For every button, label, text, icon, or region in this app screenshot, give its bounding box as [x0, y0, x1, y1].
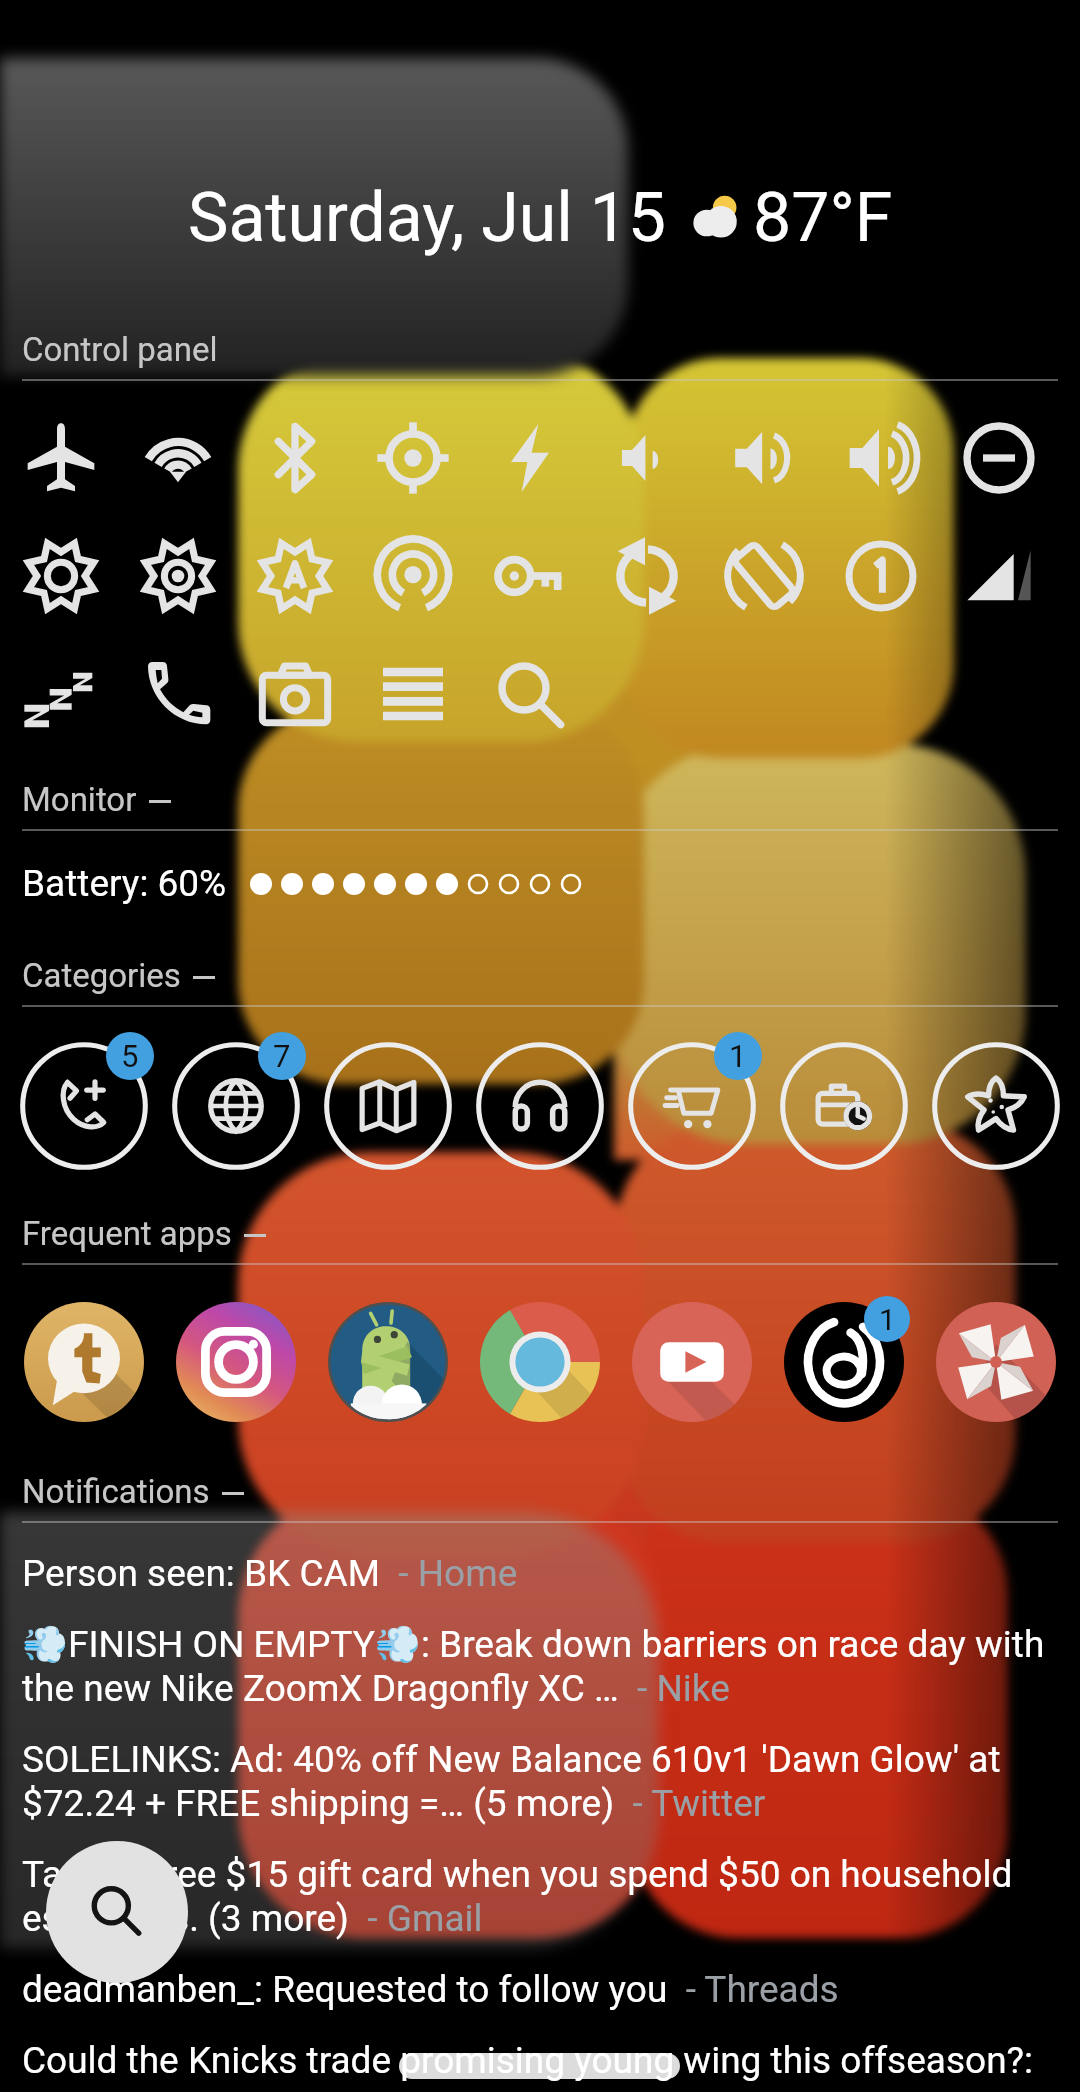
button[interactable]: Auto rotate — [720, 532, 808, 620]
button[interactable]: Person seen: BK CAM - Home — [22, 1552, 1062, 1595]
staticText: Monitor — [22, 780, 137, 819]
button[interactable]: Brightness level — [134, 532, 222, 620]
button[interactable]: Auto sync — [603, 532, 691, 620]
staticText: 1 — [729, 1038, 747, 1074]
button[interactable]: Chrome — [478, 1300, 602, 1424]
staticText: 7 — [273, 1038, 291, 1074]
button[interactable]: Android — [326, 1300, 450, 1424]
button[interactable]: Work — [774, 1036, 914, 1176]
button[interactable]: Flashlight — [486, 414, 574, 502]
button[interactable]: Photos — [934, 1300, 1058, 1424]
staticText: 1 — [879, 1302, 896, 1337]
staticText: Categories — [22, 956, 181, 995]
button[interactable]: Do not disturb — [955, 414, 1043, 502]
staticText: SOLELINKS: Ad: 40% off New Balance 610v1… — [22, 1738, 1062, 1825]
button[interactable]: Threads — [782, 1300, 906, 1424]
button[interactable]: 💨FINISH ON EMPTY💨: Break down barriers o… — [22, 1623, 1062, 1710]
staticText: 87°F — [753, 178, 893, 258]
button[interactable]: Phone — [134, 650, 222, 738]
button[interactable]: Maps — [318, 1036, 458, 1176]
staticText: deadmanben_: Requested to follow you - T… — [22, 1968, 839, 2011]
button[interactable]: Camera — [251, 650, 339, 738]
staticText: Battery: 60% — [22, 862, 227, 905]
staticText: 💨FINISH ON EMPTY💨: Break down barriers o… — [22, 1623, 1062, 1710]
button[interactable]: Could the Knicks trade promising young w… — [0, 2039, 1080, 2082]
button[interactable]: Calls — [14, 1036, 154, 1176]
staticText: Person seen: BK CAM - Home — [22, 1552, 518, 1595]
button[interactable]: Search — [46, 1841, 188, 1983]
button[interactable]: YouTube — [630, 1300, 754, 1424]
button[interactable]: Ring volume — [603, 414, 691, 502]
staticText: Frequent apps — [22, 1214, 232, 1253]
button[interactable]: Media volume — [720, 414, 808, 502]
button[interactable]: Auto brightness — [251, 532, 339, 620]
staticText: Control panel — [22, 330, 218, 369]
button[interactable]: Alarm volume — [837, 414, 925, 502]
button[interactable]: Sleep — [17, 650, 105, 738]
staticText: Could the Knicks trade promising young w… — [22, 2039, 1034, 2082]
button[interactable]: Airplane mode — [17, 414, 105, 502]
button[interactable]: Search — [486, 650, 574, 738]
button[interactable]: Signal — [955, 532, 1043, 620]
button[interactable]: Browser — [166, 1036, 306, 1176]
button[interactable]: Brightness — [17, 532, 105, 620]
button[interactable]: Wi-Fi — [134, 414, 222, 502]
staticText: 5 — [121, 1038, 139, 1074]
staticText: Notifications — [22, 1472, 210, 1511]
button[interactable]: Instagram — [174, 1300, 298, 1424]
button[interactable]: SOLELINKS: Ad: 40% off New Balance 610v1… — [22, 1738, 1062, 1825]
button[interactable]: deadmanben_: Requested to follow you - T… — [22, 1968, 1062, 2011]
button[interactable]: VPN — [486, 532, 574, 620]
button[interactable]: Location — [369, 414, 457, 502]
button[interactable]: Music — [470, 1036, 610, 1176]
button[interactable]: Other — [926, 1036, 1066, 1176]
button[interactable]: Menu — [369, 650, 457, 738]
staticText: Saturday, Jul 15 — [188, 178, 667, 258]
button[interactable]: SIM 1 — [837, 532, 925, 620]
button[interactable]: Shopping — [622, 1036, 762, 1176]
button[interactable]: Hotspot — [369, 532, 457, 620]
button[interactable]: Target: Free $15 gift card when you spen… — [22, 1853, 1062, 1940]
button[interactable]: Bluetooth — [251, 414, 339, 502]
button[interactable]: Tumblr — [22, 1300, 146, 1424]
staticText: Target: Free $15 gift card when you spen… — [22, 1853, 1062, 1940]
